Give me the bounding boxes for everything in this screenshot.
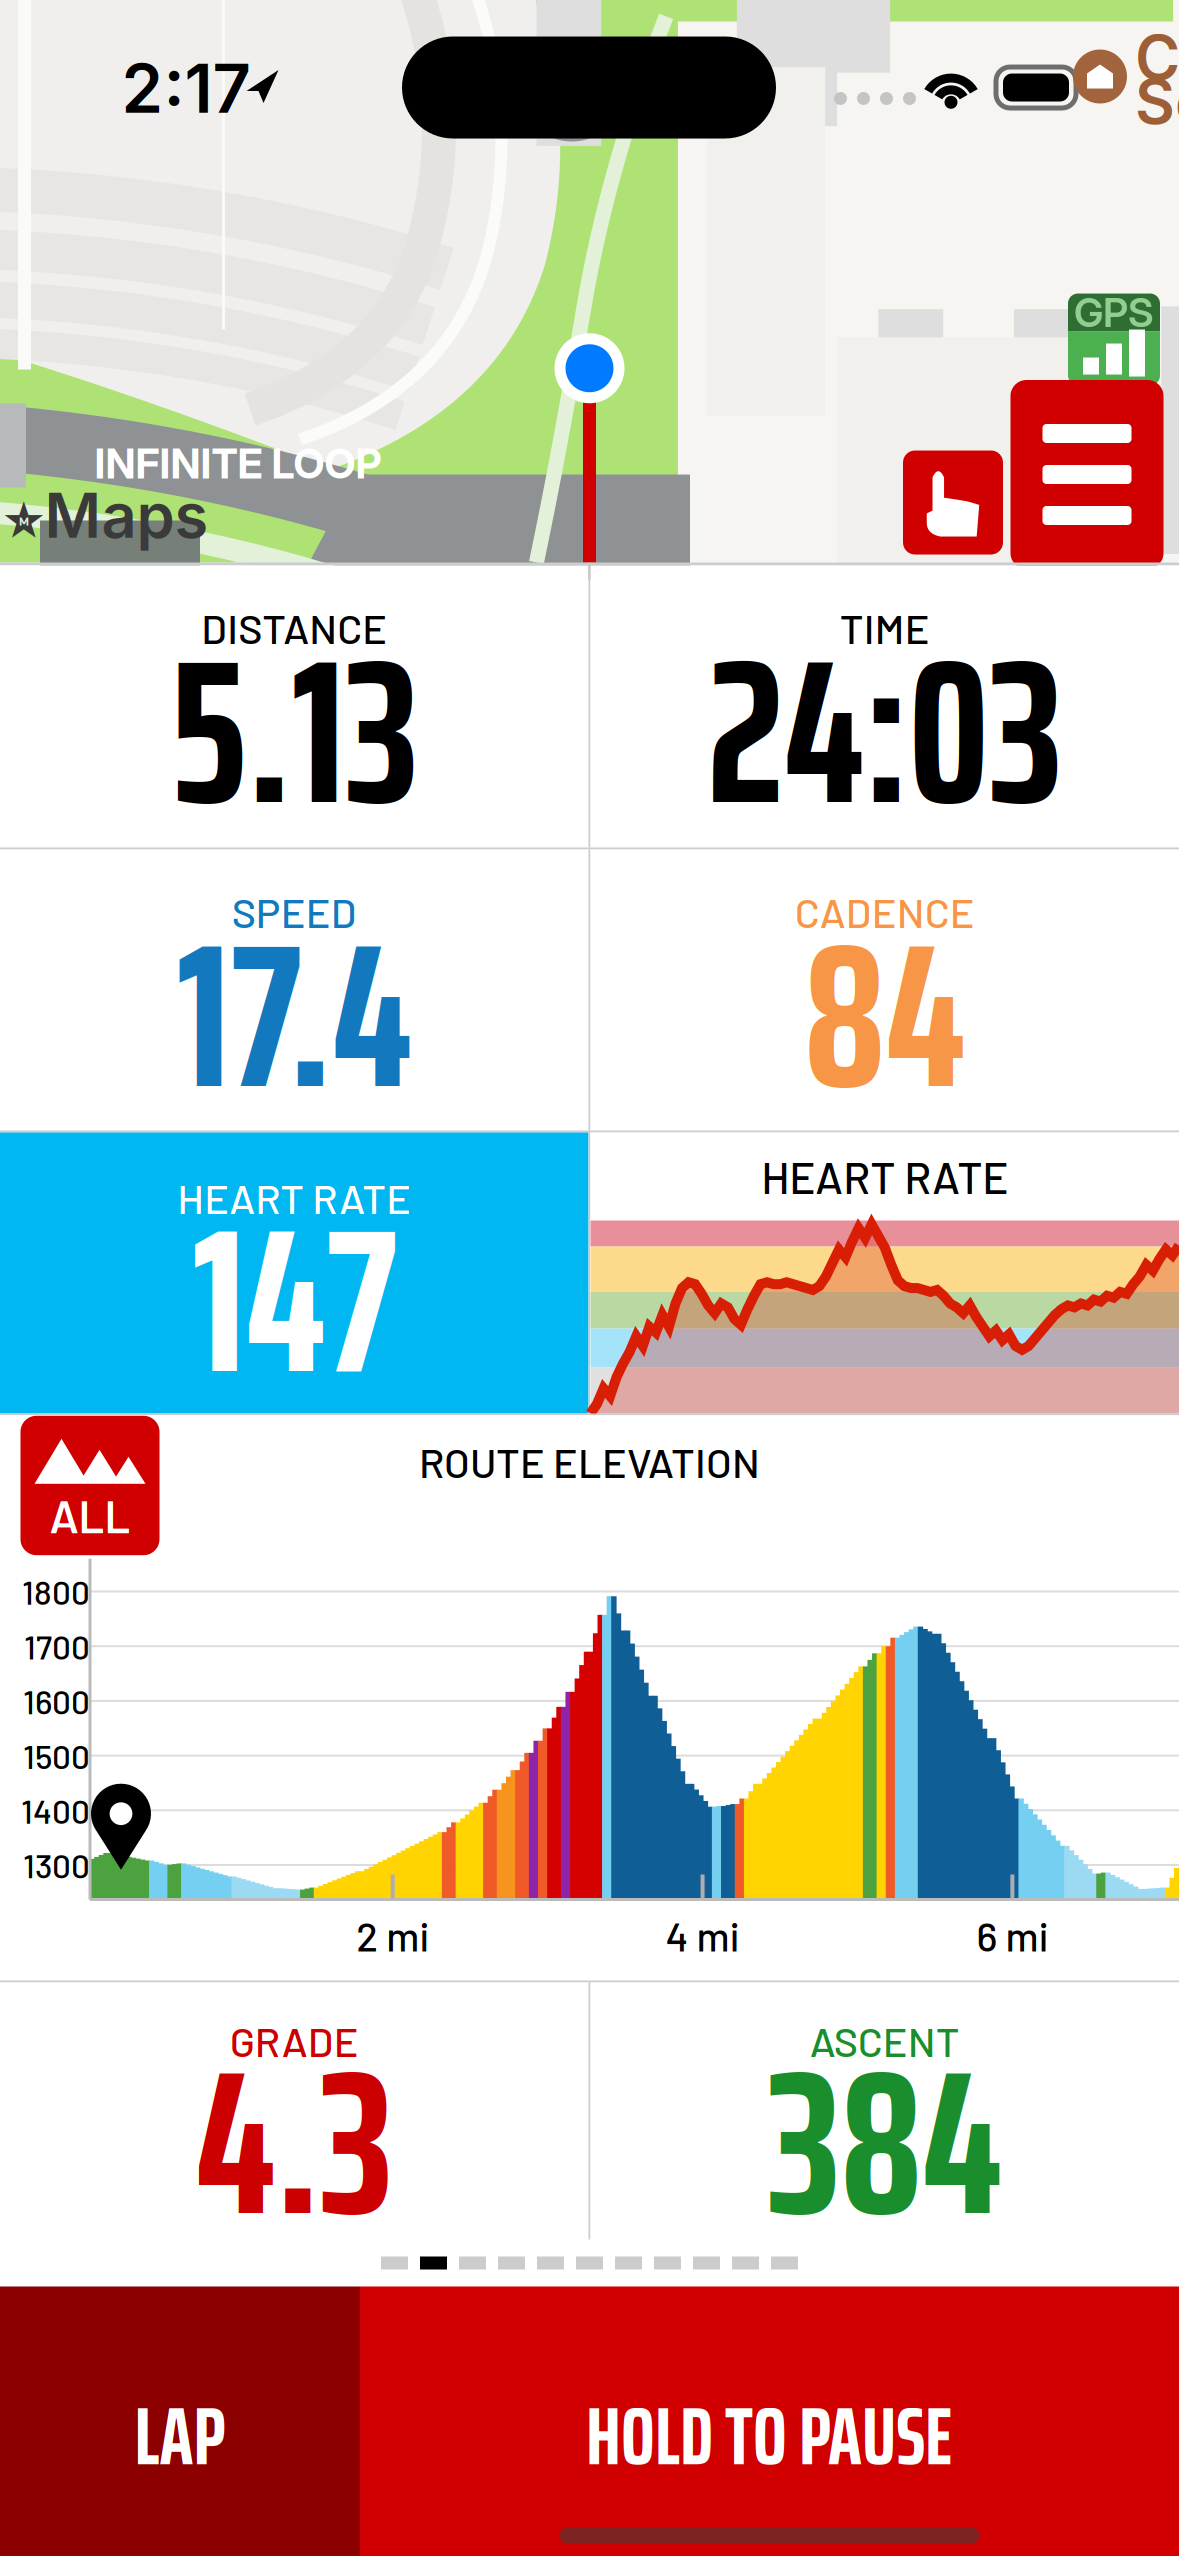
staticText: 2 mi — [356, 1911, 429, 1959]
staticText: 24:03 — [707, 572, 1062, 891]
staticText: 2:17 — [121, 48, 250, 129]
staticText: 384 — [767, 1983, 1002, 2302]
staticText: LAP — [134, 2373, 225, 2499]
staticText: GPS — [1074, 288, 1154, 337]
staticText: INFINITE LOOP — [94, 438, 381, 488]
staticText: Sch — [1135, 64, 1179, 139]
button[interactable]: Lock map — [903, 450, 1003, 554]
staticText: 1600 — [23, 1681, 90, 1721]
staticText: Maps — [3, 476, 208, 553]
button[interactable]: LAP — [0, 2286, 360, 2556]
staticText: 147 — [192, 1141, 397, 1460]
staticText: GRADE — [230, 2016, 359, 2065]
staticText: 1800 — [22, 1571, 90, 1611]
staticText: 4 mi — [666, 1911, 740, 1959]
staticText: 6 mi — [976, 1911, 1048, 1959]
button[interactable]: HOLD TO PAUSE — [360, 2286, 1179, 2556]
staticText: 1300 — [23, 1845, 90, 1885]
staticText: SPEED — [232, 887, 357, 936]
staticText: HEART RATE — [761, 1150, 1008, 1203]
staticText: ASCENT — [810, 2016, 960, 2065]
staticText: 1400 — [21, 1790, 90, 1830]
staticText: HOLD TO PAUSE — [586, 2373, 953, 2499]
button[interactable]: Menu — [1010, 380, 1163, 569]
staticText: 84 — [804, 856, 966, 1175]
staticText: 17.4 — [176, 856, 412, 1175]
staticText: DISTANCE — [201, 603, 387, 652]
staticText: HEART RATE — [177, 1173, 411, 1222]
staticText: Cup — [1135, 20, 1179, 95]
staticText: 1700 — [24, 1626, 90, 1666]
staticText: 1500 — [23, 1736, 90, 1776]
staticText: CADENCE — [795, 887, 975, 936]
staticText: ROUTE ELEVATION — [419, 1437, 760, 1486]
staticText: ALL — [49, 1488, 130, 1542]
staticText: TIME — [840, 603, 930, 652]
button[interactable]: Elevation filter: All — [20, 1416, 159, 1555]
staticText: 4.3 — [196, 1983, 393, 2302]
staticText: 5.13 — [170, 572, 418, 891]
